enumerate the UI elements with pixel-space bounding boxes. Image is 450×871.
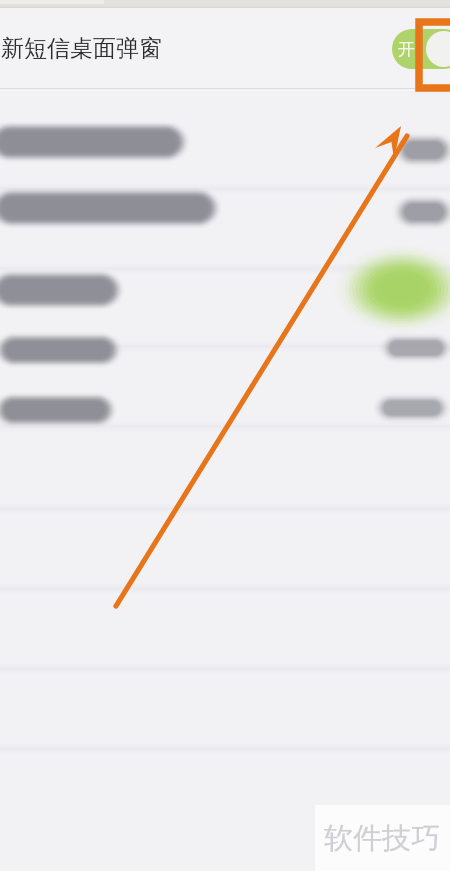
staticText: 新短信桌面弹窗 — [1, 34, 162, 63]
button[interactable]: 新短信桌面弹窗 — [0, 8, 450, 89]
button[interactable]: 新短信桌面弹窗开关，已开启 — [392, 29, 450, 69]
staticText: 开 — [398, 39, 415, 60]
staticText: 软件技巧 — [324, 820, 440, 857]
